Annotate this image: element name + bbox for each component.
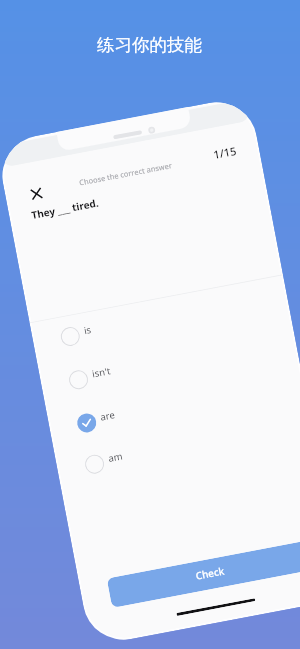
staticText: Choose the correct answer bbox=[78, 160, 173, 188]
button[interactable]: Close bbox=[31, 188, 42, 200]
staticText: 练习你的技能 bbox=[97, 34, 202, 56]
button[interactable]: isn't bbox=[38, 317, 299, 407]
staticText: Check bbox=[194, 563, 225, 583]
button[interactable]: am bbox=[54, 402, 300, 491]
staticText: isn't bbox=[91, 364, 112, 380]
staticText: am bbox=[107, 449, 124, 465]
button[interactable]: is bbox=[29, 274, 291, 364]
staticText: 1/15 bbox=[212, 143, 238, 162]
button[interactable]: Check bbox=[107, 541, 300, 608]
button[interactable]: are bbox=[46, 361, 300, 450]
staticText: are bbox=[99, 408, 116, 424]
staticText: They ___ tired. bbox=[30, 196, 100, 222]
staticText: is bbox=[83, 323, 93, 337]
